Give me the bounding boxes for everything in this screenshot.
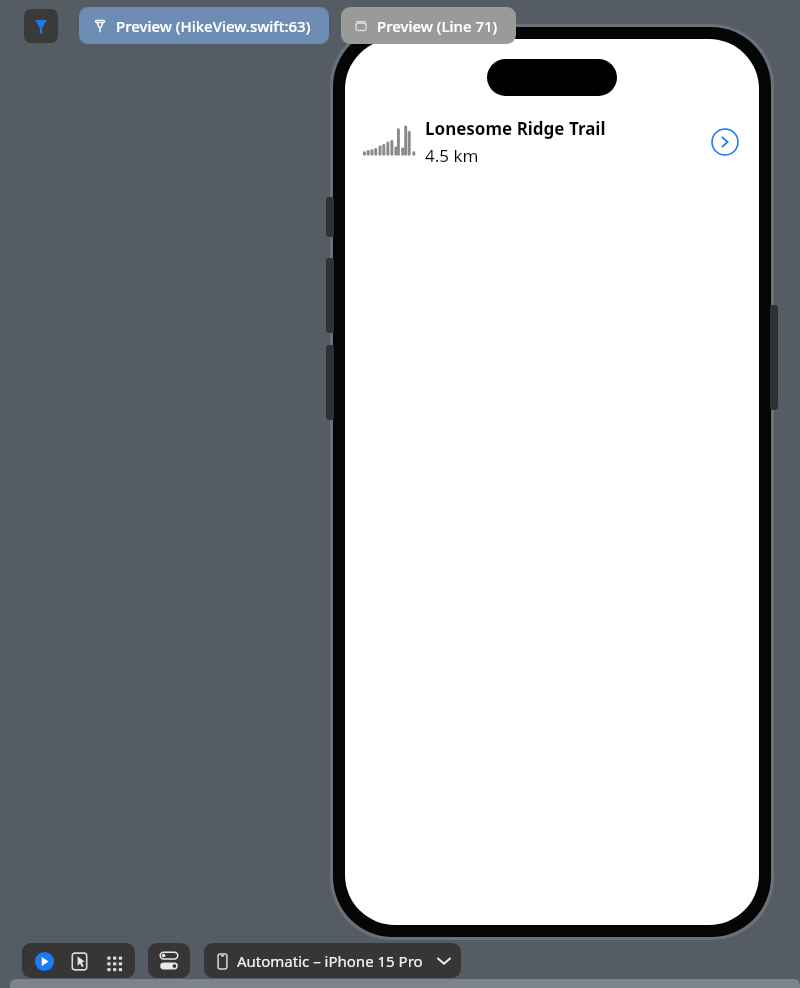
- staticText: Preview (Line 71): [377, 16, 498, 36]
- button[interactable]: Preview (HikeView.swift:63): [79, 7, 329, 44]
- button[interactable]: Variants: [100, 948, 126, 974]
- button[interactable]: Show details: [711, 128, 739, 156]
- staticText: Preview (HikeView.swift:63): [116, 16, 311, 36]
- staticText: Lonesome Ridge Trail: [425, 117, 606, 140]
- staticText: 4.5 km: [425, 144, 479, 167]
- staticText: Automatic – iPhone 15 Pro: [237, 951, 423, 971]
- button[interactable]: Play preview: [31, 948, 57, 974]
- button[interactable]: Preview (Line 71): [341, 7, 516, 44]
- button[interactable]: Preview settings: [148, 943, 190, 978]
- button[interactable]: Pin preview: [24, 9, 58, 43]
- button[interactable]: Select: [66, 948, 92, 974]
- button[interactable]: Lonesome Ridge Trail: [345, 117, 759, 167]
- button[interactable]: Automatic – iPhone 15 Pro: [204, 943, 461, 978]
